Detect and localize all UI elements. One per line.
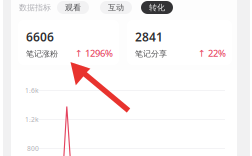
button[interactable]: 数据指标 [19, 1, 59, 14]
staticText: 数据指标 [19, 3, 51, 12]
staticText: 1.6k [25, 86, 39, 95]
staticText: 转化 [149, 3, 165, 12]
staticText: 互动 [108, 3, 124, 12]
staticText: ↑ 22% [198, 47, 226, 59]
button[interactable]: 2841 [127, 20, 232, 65]
staticText: 800 [27, 144, 39, 153]
staticText: 笔记涨粉 [26, 49, 58, 59]
button[interactable]: 6606 [18, 20, 119, 65]
staticText: 笔记分享 [135, 49, 167, 59]
staticText: 6606 [26, 29, 54, 45]
staticText: ↑ 1296% [75, 47, 113, 59]
button[interactable]: 转化 [141, 1, 173, 14]
staticText: 1.2k [25, 115, 39, 124]
staticText: 观看 [65, 3, 81, 12]
staticText: 2841 [135, 29, 163, 45]
button[interactable]: 观看 [57, 1, 89, 14]
button[interactable]: 互动 [100, 1, 132, 14]
